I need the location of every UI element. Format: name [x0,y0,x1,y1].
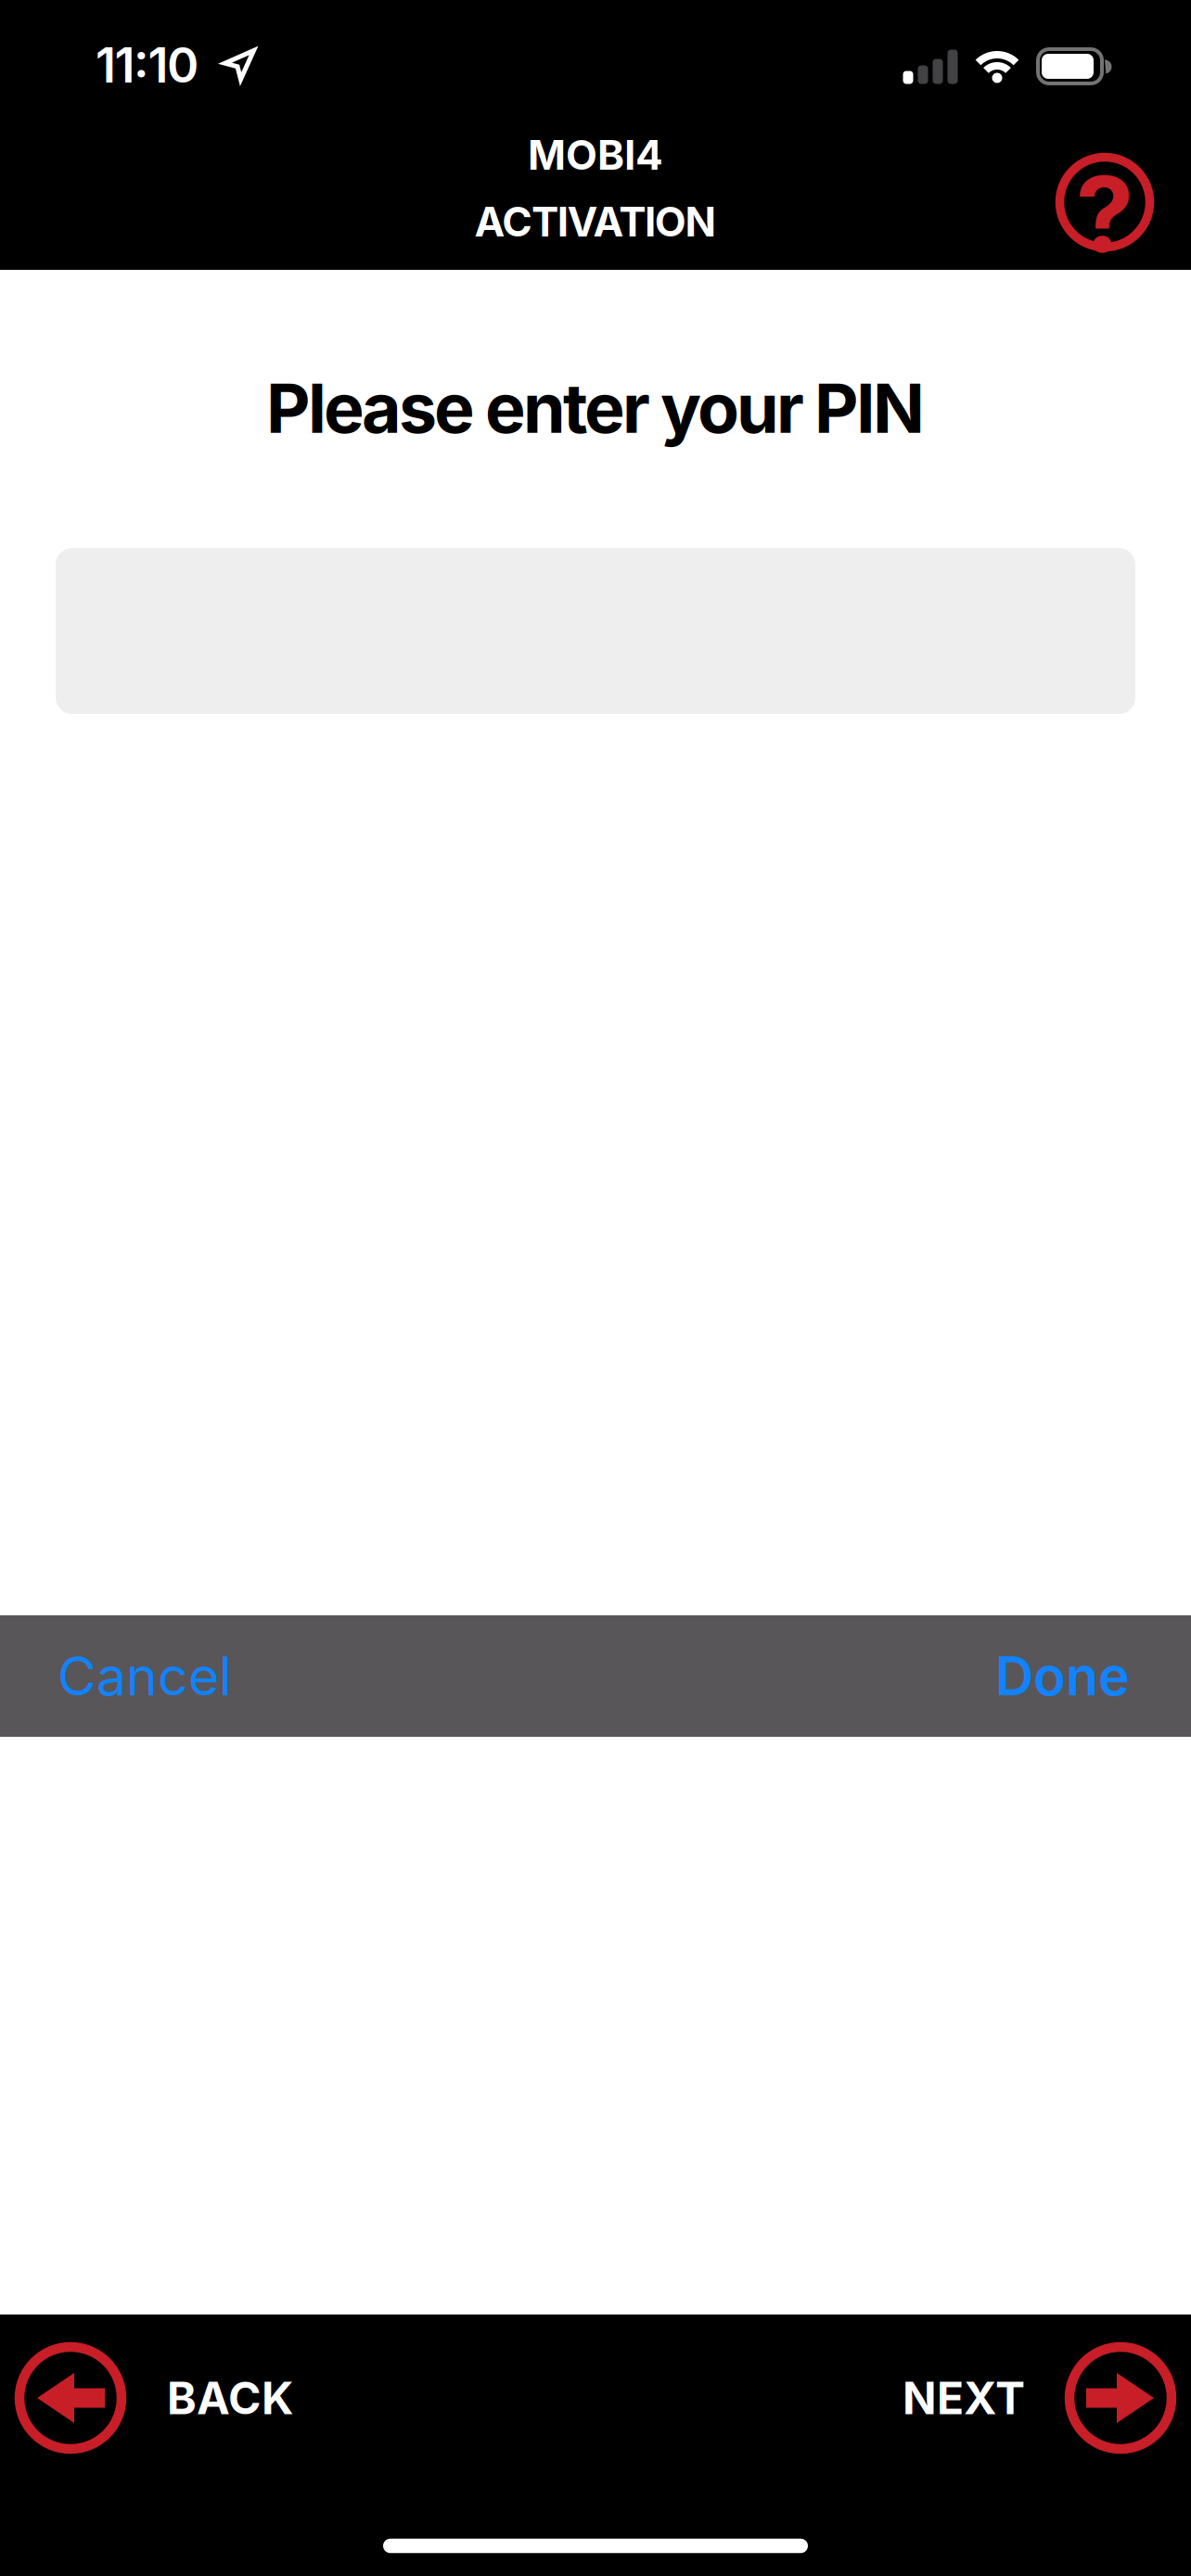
staticText: Please enter your PIN [266,368,925,448]
staticText: MOBI4 [528,131,663,179]
button[interactable]: Help [1054,151,1156,253]
staticText: ACTIVATION [474,198,717,246]
staticText: Done [995,1645,1130,1707]
button[interactable]: NEXT [870,2338,1176,2458]
staticText: ? [1076,153,1134,275]
button[interactable]: Cancel [58,1645,232,1707]
staticText: Cancel [58,1645,232,1707]
staticText: BACK [167,2372,294,2424]
staticText: NEXT [903,2372,1025,2424]
button[interactable]: BACK [15,2338,321,2458]
button[interactable]: Done [995,1645,1130,1707]
staticText: 11:10 [96,36,198,93]
